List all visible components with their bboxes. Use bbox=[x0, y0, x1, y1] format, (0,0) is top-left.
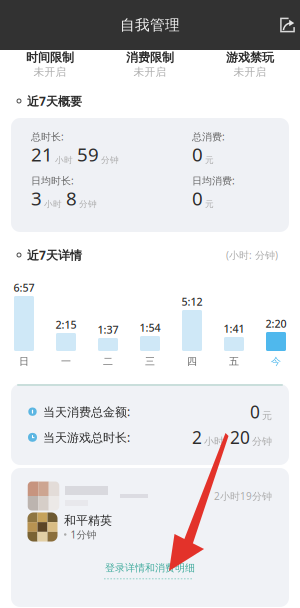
button[interactable]: 和平精英 bbox=[11, 512, 289, 542]
staticText: 时间限制 bbox=[26, 50, 74, 65]
staticText: 日均消费: bbox=[192, 174, 235, 187]
staticText: 小时 bbox=[55, 155, 73, 165]
staticText: 当天游戏总时长: bbox=[43, 429, 130, 445]
staticText: 近7天概要 bbox=[27, 93, 82, 109]
staticText: 未开启 bbox=[133, 65, 166, 79]
staticText: 消费限制 bbox=[126, 50, 174, 65]
staticText: 日均时长: bbox=[31, 174, 74, 187]
staticText: 21 bbox=[31, 142, 53, 167]
staticText: 元 bbox=[205, 199, 214, 209]
staticText: 0 bbox=[250, 400, 260, 423]
staticText: 0 bbox=[192, 142, 203, 167]
button[interactable]: 登录详情和消费明细 bbox=[11, 560, 289, 581]
staticText: 分钟 bbox=[101, 155, 119, 165]
staticText: 2:15 bbox=[55, 317, 76, 332]
staticText: 自我管理 bbox=[120, 16, 180, 34]
staticText: 登录详情和消费明细 bbox=[105, 562, 195, 574]
button[interactable]: 时间限制 bbox=[0, 52, 100, 77]
staticText: 今 bbox=[271, 355, 281, 368]
staticText: 未开启 bbox=[33, 65, 66, 79]
staticText: 1:41 bbox=[223, 321, 244, 336]
staticText: 59 bbox=[77, 142, 99, 167]
staticText: 元 bbox=[262, 409, 272, 422]
staticText: 和平精英 bbox=[64, 513, 112, 528]
staticText: 2:20 bbox=[265, 316, 286, 331]
staticText: 总消费: bbox=[192, 130, 225, 143]
staticText: 8 bbox=[66, 186, 77, 211]
staticText: 五 bbox=[229, 355, 239, 368]
staticText: 一 bbox=[61, 355, 71, 368]
staticText: 元 bbox=[205, 155, 214, 165]
staticText: 2小时19分钟 bbox=[214, 489, 272, 503]
staticText: 2 bbox=[192, 425, 202, 449]
staticText: 分钟 bbox=[252, 435, 272, 448]
button[interactable]: Share bbox=[280, 17, 295, 32]
staticText: 三 bbox=[145, 355, 155, 368]
staticText: 二 bbox=[103, 355, 113, 368]
button[interactable]: 消费限制 bbox=[100, 52, 200, 77]
staticText: 游戏禁玩 bbox=[226, 50, 274, 65]
button[interactable]: 游戏禁玩 bbox=[200, 52, 300, 77]
staticText: 日 bbox=[19, 355, 29, 368]
staticText: 5:12 bbox=[181, 294, 202, 309]
staticText: 未开启 bbox=[233, 65, 266, 79]
staticText: 近7天详情 bbox=[27, 247, 82, 263]
staticText: 6:57 bbox=[13, 280, 34, 295]
staticText: 20 bbox=[230, 425, 250, 449]
staticText: 总时长: bbox=[31, 130, 64, 143]
staticText: 当天消费总金额: bbox=[43, 403, 130, 420]
staticText: 四 bbox=[187, 355, 197, 368]
staticText: 分钟 bbox=[79, 199, 97, 209]
staticText: (小时: 分钟) bbox=[226, 248, 278, 262]
staticText: 1:54 bbox=[139, 320, 160, 335]
staticText: 小时 bbox=[204, 435, 224, 448]
staticText: 1:37 bbox=[97, 322, 118, 337]
staticText: 0 bbox=[192, 186, 203, 211]
staticText: 小时 bbox=[44, 199, 62, 209]
staticText: 3 bbox=[31, 186, 42, 211]
staticText: 1分钟 bbox=[70, 528, 96, 541]
